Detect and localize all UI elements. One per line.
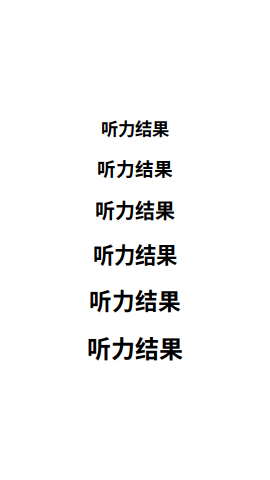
staticText: 听力结果 <box>95 195 175 224</box>
staticText: 听力结果 <box>89 283 181 316</box>
staticText: 听力结果 <box>101 115 169 140</box>
staticText: 听力结果 <box>87 330 183 365</box>
staticText: 听力结果 <box>97 154 173 181</box>
staticText: 听力结果 <box>93 238 177 269</box>
